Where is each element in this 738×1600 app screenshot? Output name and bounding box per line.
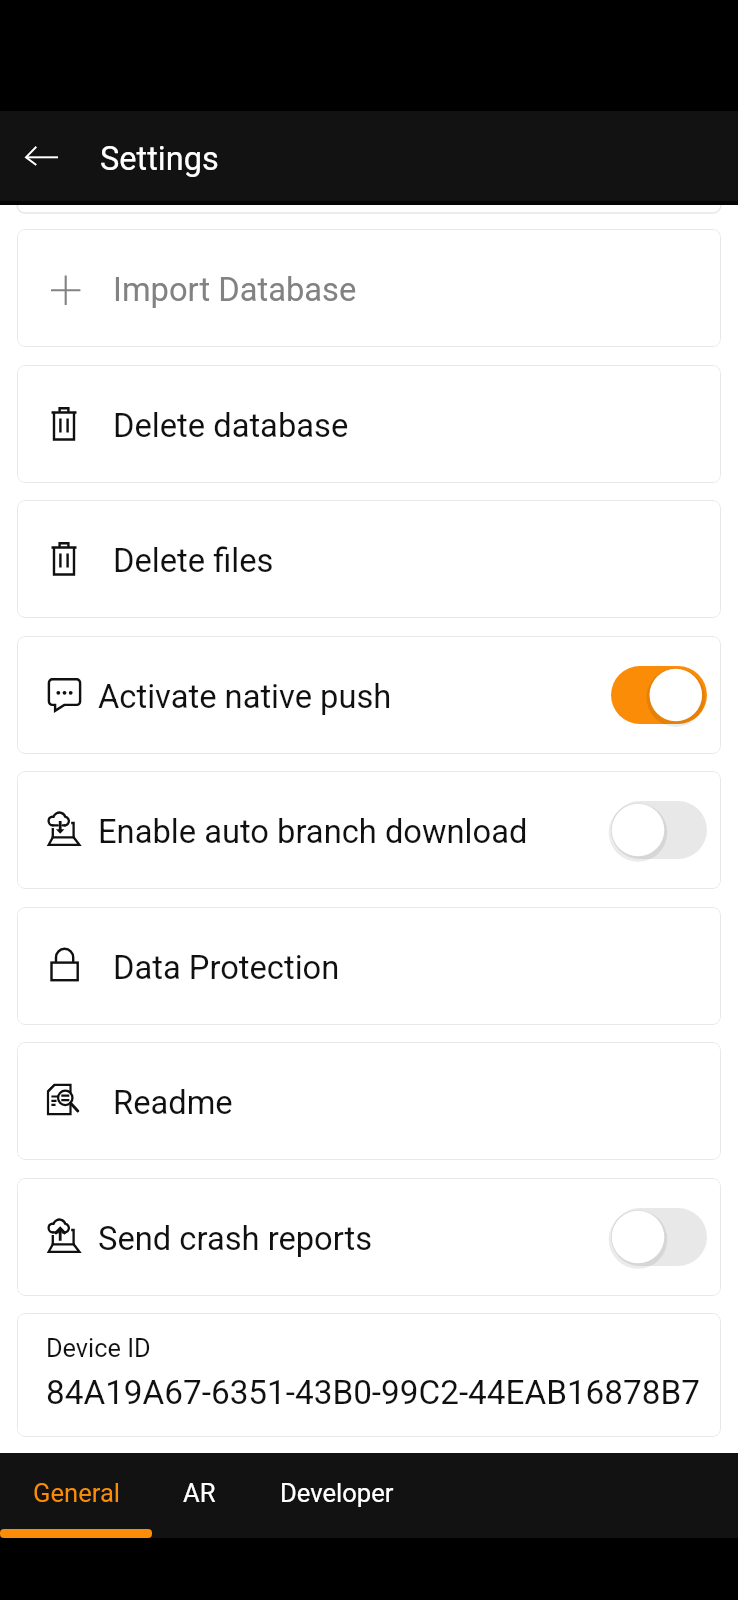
staticText: Activate native push — [98, 678, 392, 716]
staticText: Developer — [280, 1478, 394, 1508]
button[interactable]: Enable auto branch download — [611, 801, 707, 859]
button[interactable]: Send crash reports — [611, 1208, 707, 1266]
button[interactable]: Import Database — [17, 229, 721, 347]
staticText: Delete files — [113, 542, 274, 580]
staticText: AR — [183, 1478, 216, 1508]
staticText: General — [33, 1478, 121, 1508]
staticText: Send crash reports — [98, 1220, 373, 1258]
button[interactable]: Delete files — [17, 500, 721, 618]
staticText: Data Protection — [113, 949, 340, 987]
button[interactable]: Enable auto branch download — [17, 771, 721, 889]
button[interactable]: Send crash reports — [17, 1178, 721, 1296]
staticText: 84A19A67-6351-43B0-99C2-44EAB16878B7 — [46, 1373, 700, 1412]
button[interactable]: AR — [153, 1453, 245, 1538]
staticText: Delete database — [113, 407, 349, 445]
staticText: Import Database — [113, 271, 357, 309]
button[interactable]: General — [0, 1453, 153, 1538]
staticText: Settings — [100, 140, 219, 178]
button[interactable]: Back — [0, 111, 84, 205]
staticText: Enable auto branch download — [98, 813, 528, 851]
button[interactable]: Readme — [17, 1042, 721, 1160]
button[interactable]: Data Protection — [17, 907, 721, 1025]
button[interactable]: Delete database — [17, 365, 721, 483]
staticText: Device ID — [46, 1334, 151, 1364]
button[interactable]: Activate native push — [611, 666, 707, 724]
button[interactable]: Developer — [245, 1453, 429, 1538]
staticText: Readme — [113, 1084, 233, 1122]
button[interactable]: Activate native push — [17, 636, 721, 754]
button[interactable]: Device ID — [17, 1313, 721, 1437]
